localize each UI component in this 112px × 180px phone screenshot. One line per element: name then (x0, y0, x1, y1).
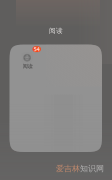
staticText: 54 (34, 46, 40, 53)
staticText: 知识网 (80, 164, 104, 174)
staticText: 爱吉林 (56, 164, 80, 174)
button[interactable]: 阅读 folder (9, 44, 102, 152)
staticText: 阅读 (49, 27, 63, 35)
button[interactable]: 阅读 (49, 27, 63, 35)
staticText: 阅读 (22, 63, 32, 69)
